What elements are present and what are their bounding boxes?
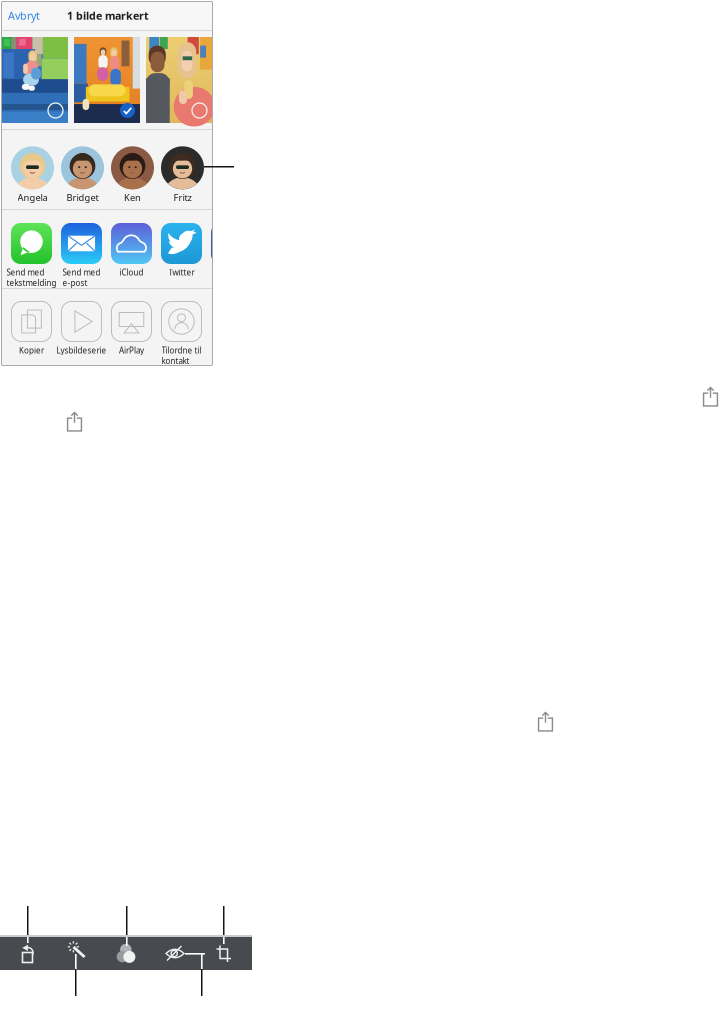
button[interactable]: iCloud	[111, 223, 152, 293]
staticText: Avbryt	[8, 8, 40, 23]
staticText: Lysbildeserie	[56, 345, 106, 356]
staticText: Send med e-post	[62, 267, 100, 288]
staticText: Twitter	[168, 267, 194, 278]
button[interactable]: Share	[700, 386, 719, 407]
staticText: Bridget	[66, 191, 98, 204]
staticText: 1 bilde markert	[67, 8, 149, 23]
button[interactable]: Tilordne til kontakt	[161, 301, 202, 371]
button[interactable]: Crop	[209, 937, 239, 970]
staticText: iCloud	[119, 267, 143, 278]
button[interactable]: Send med e-post	[61, 223, 102, 293]
button[interactable]: Remove red-eye	[160, 937, 190, 970]
button[interactable]: Angela	[11, 145, 54, 205]
button[interactable]: Rotate	[12, 937, 42, 970]
button[interactable]	[2, 37, 68, 123]
staticText: Kopier	[19, 345, 44, 356]
staticText: Fritz	[173, 191, 191, 204]
staticText: Tilordne til kontakt	[161, 345, 201, 366]
button[interactable]: Send med tekstmelding	[11, 223, 52, 293]
button[interactable]: Filters	[111, 937, 141, 970]
button[interactable]: Facebook	[211, 223, 252, 264]
staticText: Ken	[124, 191, 141, 204]
button[interactable]: Ken	[111, 145, 154, 205]
button[interactable]	[146, 37, 212, 123]
button[interactable]: Lysbildeserie	[61, 301, 102, 371]
button[interactable]: Avbryt	[1, 1, 44, 30]
button[interactable]: Auto enhance	[61, 937, 91, 970]
staticText: Angela	[17, 191, 47, 204]
staticText: AirPlay	[119, 345, 144, 356]
button[interactable]	[74, 37, 140, 123]
staticText: Send med tekstmelding	[6, 267, 56, 288]
button[interactable]: Kopier	[11, 301, 52, 371]
button[interactable]: Share	[64, 411, 85, 432]
button[interactable]: Twitter	[161, 223, 202, 293]
button[interactable]: Bridget	[61, 145, 104, 205]
button[interactable]: Fritz	[161, 145, 204, 205]
button[interactable]: AirPlay	[111, 301, 152, 371]
button[interactable]: Share	[535, 711, 556, 732]
